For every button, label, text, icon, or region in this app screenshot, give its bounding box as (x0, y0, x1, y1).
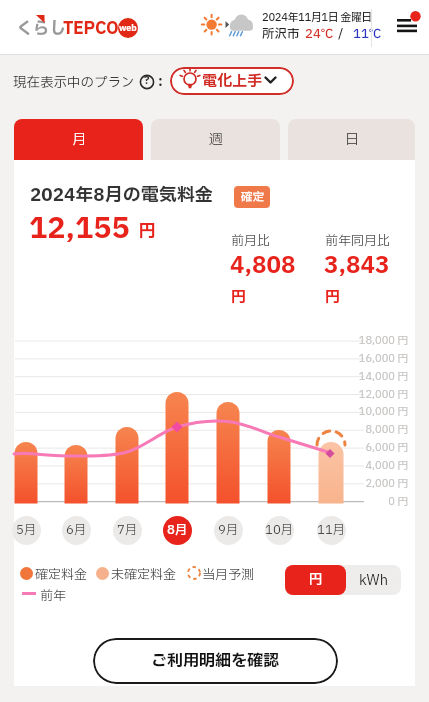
button[interactable]: 7月 (113, 516, 142, 545)
button[interactable]: 8月 (163, 516, 192, 545)
button[interactable]: 5月 (12, 516, 41, 545)
staticText: 未確定料金 (111, 565, 177, 584)
staticText: 4,000 円 (365, 458, 408, 474)
staticText: 11℃ (353, 25, 382, 44)
staticText: ご利用明細を確認 (151, 649, 280, 673)
staticText: 当月予測 (202, 565, 255, 584)
staticText: 6,000 円 (365, 440, 408, 456)
staticText: 円 (325, 286, 341, 308)
staticText: 円 (231, 286, 247, 308)
staticText: 7月 (117, 521, 138, 540)
staticText: 0 円 (388, 494, 408, 510)
button[interactable]: kWh (346, 565, 401, 595)
staticText: 12,155 (29, 207, 130, 250)
staticText: 2024年8月の電気料金 (30, 182, 213, 209)
staticText: 確定 (241, 189, 264, 206)
staticText: 所沢市 (262, 25, 300, 44)
staticText: 前年 (40, 586, 67, 605)
button[interactable]: 週 (151, 119, 280, 160)
staticText: 9月 (218, 521, 239, 540)
staticText: 2024年11月1日 金曜日 (262, 10, 372, 26)
staticText: 前年同月比 (325, 231, 391, 250)
staticText: 円 (309, 570, 323, 590)
staticText: 8,000 円 (365, 422, 408, 438)
staticText: / (338, 25, 344, 44)
staticText: ? (144, 73, 150, 89)
staticText: kWh (359, 570, 388, 591)
staticText: 4,808 (230, 249, 296, 283)
staticText: 5月 (16, 521, 37, 540)
staticText: 前月比 (231, 231, 271, 250)
button[interactable]: 11月 (317, 516, 346, 545)
staticText: 6月 (66, 521, 87, 540)
staticText: 2,000 円 (365, 476, 408, 492)
staticText: 10月 (265, 521, 294, 540)
button[interactable] (170, 67, 294, 95)
button[interactable] (390, 8, 424, 40)
staticText: 8月 (167, 521, 188, 540)
staticText: 日 (345, 129, 359, 150)
button[interactable]: 日 (288, 119, 415, 160)
staticText: 18,000 円 (358, 333, 408, 349)
button[interactable]: 円 (285, 565, 346, 595)
staticText: web (119, 22, 137, 35)
staticText: 円 (139, 219, 156, 244)
staticText: 週 (209, 129, 223, 150)
button[interactable]: 9月 (214, 516, 243, 545)
staticText: 11月 (317, 521, 346, 540)
staticText: 確定料金 (35, 565, 88, 584)
staticText: 14,000 円 (358, 369, 408, 385)
staticText: 現在表示中のプラン (13, 73, 135, 93)
staticText: 10,000 円 (358, 404, 408, 420)
button[interactable]: 月 (14, 119, 143, 160)
button[interactable]: ご利用明細を確認 (93, 638, 338, 684)
button[interactable]: 10月 (265, 516, 294, 545)
staticText: TEPCO (63, 16, 119, 41)
staticText: 電化上手 (202, 70, 263, 92)
staticText: 16,000 円 (358, 351, 408, 367)
staticText: 月 (72, 129, 86, 150)
staticText: 24℃ (305, 25, 334, 44)
staticText: 12,000 円 (358, 387, 408, 403)
button[interactable]: 6月 (62, 516, 91, 545)
staticText: 3,843 (324, 249, 390, 283)
staticText: くらし (16, 17, 66, 42)
staticText: : (158, 71, 163, 92)
